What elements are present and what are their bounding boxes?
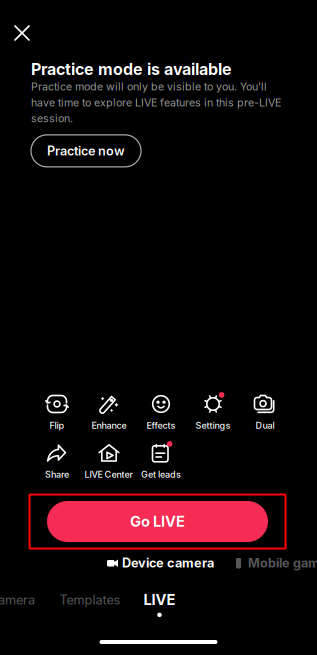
button[interactable]: Enhance: [83, 393, 135, 432]
staticText: Go LIVE: [130, 513, 185, 530]
staticText: Share: [45, 469, 69, 480]
button[interactable]: Practice now: [31, 135, 141, 167]
button[interactable]: Mobile gaming: [233, 555, 317, 571]
staticText: Practice mode is available: [31, 59, 232, 79]
button[interactable]: Flip: [31, 393, 83, 432]
staticText: Camera: [0, 592, 35, 608]
staticText: LIVE Center: [84, 469, 133, 480]
button[interactable]: Camera: [0, 590, 36, 610]
button[interactable]: Go LIVE: [47, 501, 268, 542]
button[interactable]: Settings: [187, 393, 239, 432]
staticText: LIVE: [143, 591, 175, 609]
button[interactable]: Templates: [58, 590, 122, 610]
staticText: Enhance: [91, 420, 126, 431]
button[interactable]: Device camera: [107, 555, 214, 571]
staticText: Device camera: [122, 555, 214, 571]
staticText: Practice now: [47, 143, 125, 158]
button[interactable]: Dual: [239, 393, 291, 432]
staticText: Effects: [146, 420, 175, 431]
button[interactable]: Effects: [135, 393, 187, 432]
button[interactable]: Share: [31, 442, 83, 481]
button[interactable]: Close: [7, 18, 37, 48]
staticText: Practice mode will only be visible to yo…: [31, 80, 281, 125]
staticText: Flip: [49, 420, 64, 431]
staticText: Dual: [255, 420, 274, 431]
staticText: Get leads: [141, 469, 181, 480]
button[interactable]: LIVE: [139, 591, 179, 617]
button[interactable]: LIVE Center: [83, 442, 135, 481]
staticText: Mobile gaming: [248, 555, 317, 571]
staticText: Settings: [195, 420, 230, 431]
staticText: Templates: [59, 592, 120, 608]
button[interactable]: Get leads: [135, 442, 187, 481]
